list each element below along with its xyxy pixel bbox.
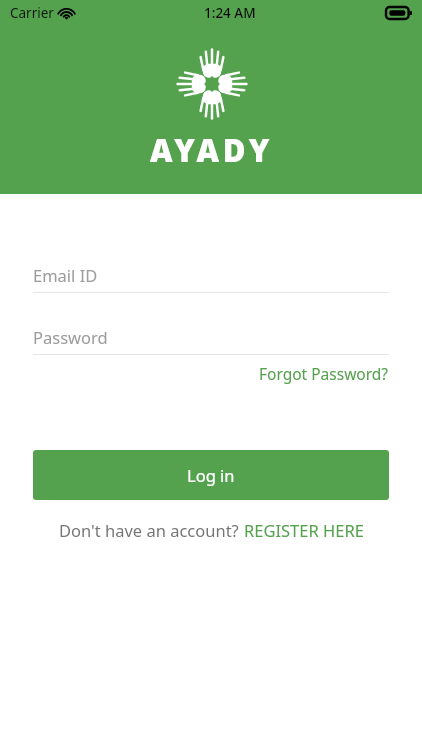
staticText: Carrier [10, 4, 54, 22]
staticText: Password [33, 326, 108, 348]
button[interactable]: Forgot Password? [259, 360, 389, 387]
staticText: REGISTER HERE [244, 519, 364, 541]
button[interactable]: Email ID [33, 258, 389, 292]
other: Wi-Fi [59, 8, 74, 19]
button[interactable]: Log in [33, 450, 389, 500]
staticText: Email ID [33, 264, 98, 286]
staticText: AYADY [150, 129, 273, 171]
staticText: 1:24 AM [204, 4, 256, 22]
staticText: Forgot Password? [259, 363, 389, 384]
other: Battery [386, 7, 412, 19]
staticText: Log in [187, 464, 235, 486]
button[interactable]: Password [33, 320, 389, 354]
staticText: Don't have an account? [59, 519, 244, 541]
button[interactable]: REGISTER HERE [244, 517, 364, 543]
